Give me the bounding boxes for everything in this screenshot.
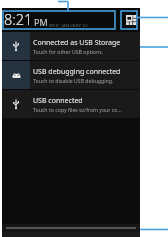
staticText: Touch for other USB options. <box>33 48 104 55</box>
staticText: USB connected <box>33 96 83 106</box>
staticText: Touch to copy files to/from your co… <box>33 106 122 113</box>
button[interactable]: Quick settings <box>126 15 136 25</box>
button[interactable]: Connected as USB Storage <box>2 32 140 60</box>
button[interactable]: USB debugging connected <box>2 61 140 89</box>
staticText: WED, JANUARY 22 <box>49 22 88 28</box>
staticText: Connected as USB Storage <box>33 38 121 48</box>
staticText: PM <box>34 16 48 28</box>
staticText: Touch to disable USB debugging. <box>33 77 114 84</box>
staticText: 8:21 <box>4 9 33 29</box>
staticText: USB debugging connected <box>33 67 121 77</box>
button[interactable]: USB connected <box>2 90 140 118</box>
